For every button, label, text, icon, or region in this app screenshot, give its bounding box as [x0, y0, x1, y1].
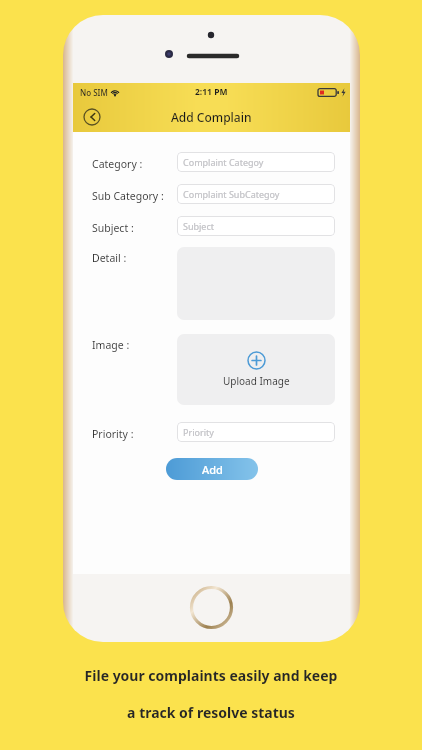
button[interactable]: Complaint SubCategoy — [177, 184, 335, 204]
staticText: Upload Image — [223, 374, 290, 388]
button[interactable]: Back — [83, 108, 101, 126]
button[interactable]: Home — [189, 585, 234, 630]
button[interactable]: Complaint Categoy — [177, 152, 335, 172]
staticText: Priority : — [92, 427, 134, 441]
staticText: 2:11 PM — [195, 86, 228, 98]
staticText: File your complaints easily and keep — [0, 666, 422, 685]
staticText: Sub Category : — [92, 189, 164, 203]
staticText: No SIM — [80, 87, 108, 98]
button[interactable]: Upload Image — [177, 334, 335, 405]
staticText: Complaint SubCategoy — [183, 188, 280, 200]
staticText: Subject : — [92, 221, 134, 235]
staticText: Add — [202, 462, 223, 477]
staticText: Add Complain — [171, 109, 252, 125]
staticText: Subject — [183, 220, 215, 232]
staticText: Detail : — [92, 251, 127, 265]
staticText: Image : — [92, 338, 130, 352]
staticText: a track of resolve status — [0, 703, 422, 722]
button[interactable]: Priority — [177, 422, 335, 442]
staticText: Category : — [92, 157, 143, 171]
staticText: Complaint Categoy — [183, 156, 264, 168]
button[interactable]: Add — [166, 458, 258, 480]
staticText: Priority — [183, 426, 214, 438]
button[interactable]: Subject — [177, 216, 335, 236]
